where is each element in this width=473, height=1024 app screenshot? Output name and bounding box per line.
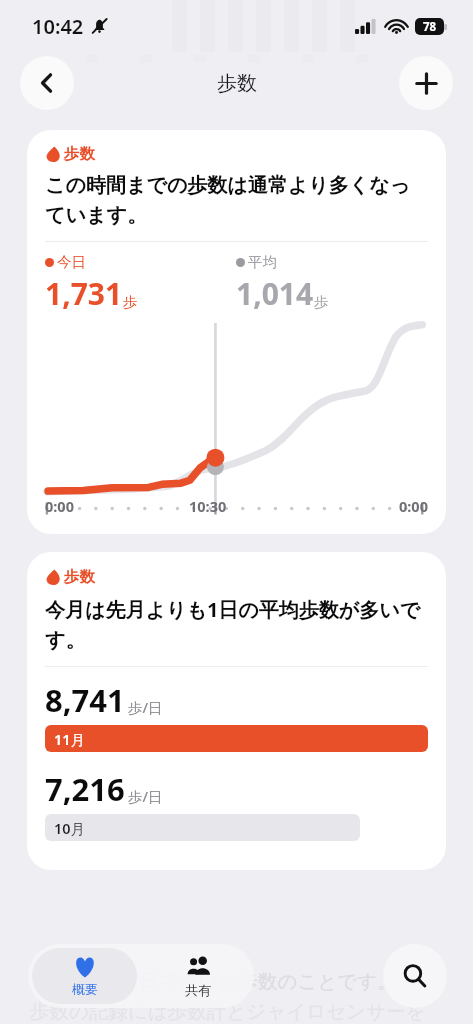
- staticText: 歩: [123, 293, 138, 311]
- staticText: 1,731: [45, 273, 123, 314]
- staticText: 10月: [54, 818, 86, 838]
- staticText: 78: [423, 19, 437, 35]
- staticText: 7,216: [45, 768, 125, 810]
- staticText: 10:42: [32, 13, 84, 40]
- staticText: 平均: [248, 253, 277, 271]
- staticText: 10:30: [189, 496, 227, 516]
- button[interactable]: Back: [20, 56, 74, 110]
- staticText: 歩数: [64, 144, 95, 164]
- button[interactable]: 共有: [141, 944, 254, 1008]
- staticText: 歩数: [64, 567, 95, 587]
- staticText: 概要: [72, 981, 98, 997]
- staticText: 歩数の記録には歩数計とジャイロセンサーを: [30, 999, 426, 1024]
- staticText: 歩数: [217, 71, 257, 96]
- staticText: 今日: [57, 253, 86, 271]
- button[interactable]: Add: [399, 56, 453, 110]
- button[interactable]: 歩数: [27, 130, 446, 534]
- staticText: 0:00: [45, 496, 74, 516]
- staticText: 歩数とは、1日で歩いた歩数のことです。: [30, 967, 397, 994]
- staticText: 1,014: [236, 273, 314, 314]
- staticText: 今月は先月よりも1日の平均歩数が多いです。: [45, 596, 428, 653]
- staticText: 歩: [314, 293, 329, 311]
- button[interactable]: 概要: [32, 948, 137, 1004]
- staticText: 8,741: [45, 679, 125, 721]
- staticText: 共有: [185, 982, 211, 998]
- staticText: 歩/日: [128, 697, 163, 717]
- button[interactable]: Search: [383, 944, 447, 1008]
- staticText: 0:00: [399, 496, 428, 516]
- staticText: 歩/日: [128, 786, 163, 806]
- button[interactable]: 歩数: [27, 552, 446, 870]
- staticText: 11月: [54, 729, 86, 749]
- staticText: この時間までの歩数は通常より多くなっています。: [45, 173, 428, 228]
